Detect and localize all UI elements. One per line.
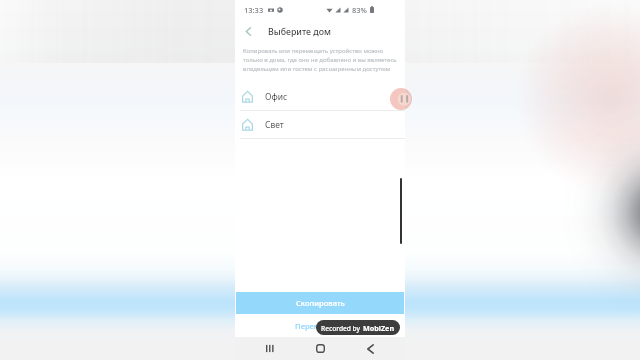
button[interactable]: Скопировать: [236, 292, 404, 314]
button[interactable]: Back: [235, 19, 261, 44]
button[interactable]: Свет: [235, 111, 405, 138]
staticText: Выберите дом: [268, 26, 331, 38]
staticText: Офис: [265, 91, 288, 103]
button[interactable]: Back: [355, 337, 385, 360]
button[interactable]: Офис: [235, 83, 405, 110]
button[interactable]: Переместить: [235, 314, 405, 337]
button[interactable]: Recents: [255, 337, 285, 360]
staticText: Переместить: [295, 321, 345, 331]
staticText: 13:33: [244, 5, 264, 15]
staticText: MobiZen: [363, 323, 395, 333]
staticText: Свет: [265, 119, 284, 131]
button[interactable]: Home: [305, 337, 335, 360]
staticText: 83%: [352, 5, 367, 15]
staticText: Копировать или перемещать устройство мож…: [243, 47, 402, 73]
staticText: Скопировать: [296, 298, 345, 308]
staticText: Recorded by: [321, 324, 360, 333]
